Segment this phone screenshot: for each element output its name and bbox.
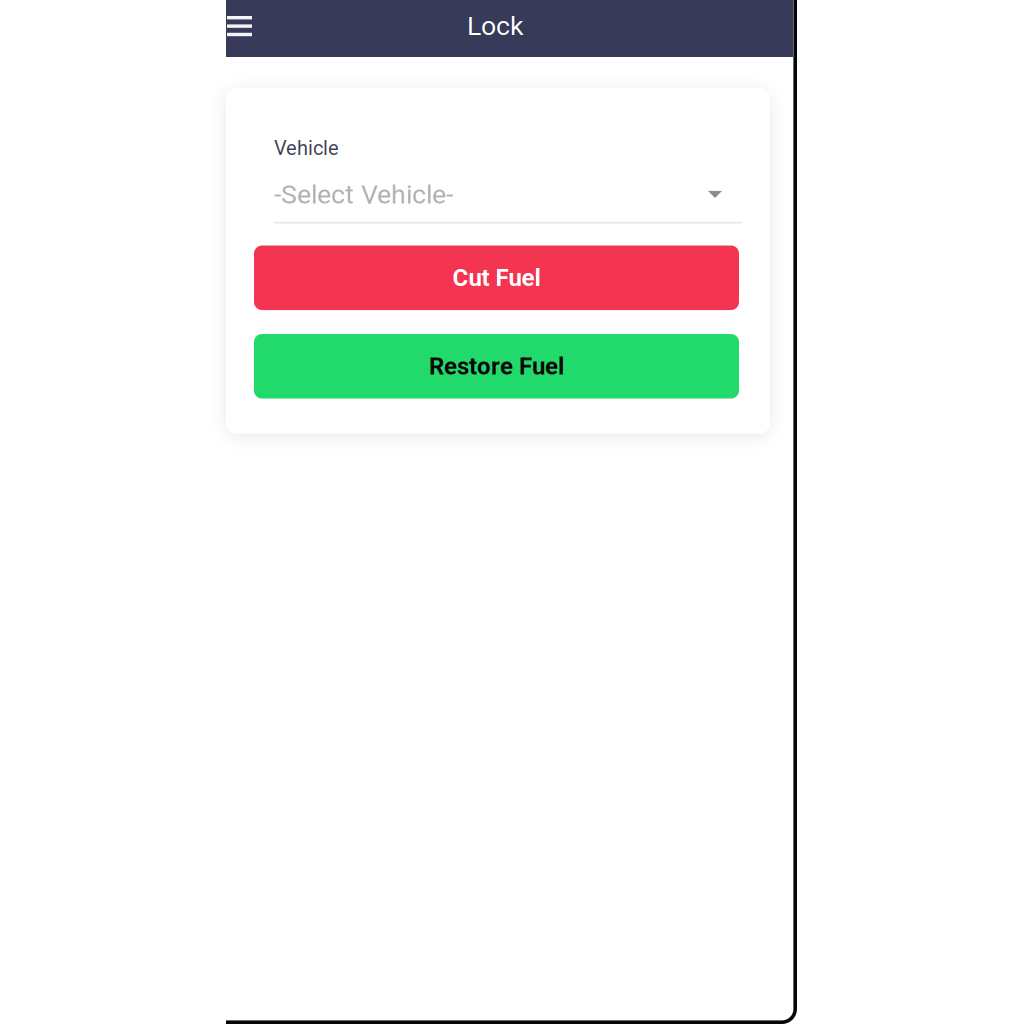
staticText: Restore Fuel <box>429 352 564 380</box>
button[interactable]: Cut Fuel <box>254 245 739 310</box>
staticText: Cut Fuel <box>452 264 540 292</box>
staticText: Vehicle <box>274 136 339 160</box>
button[interactable]: -Select Vehicle- <box>274 180 742 223</box>
button[interactable]: Restore Fuel <box>254 334 739 398</box>
button[interactable]: Menu <box>226 0 280 57</box>
staticText: -Select Vehicle- <box>274 179 453 210</box>
staticText: Lock <box>467 10 524 42</box>
